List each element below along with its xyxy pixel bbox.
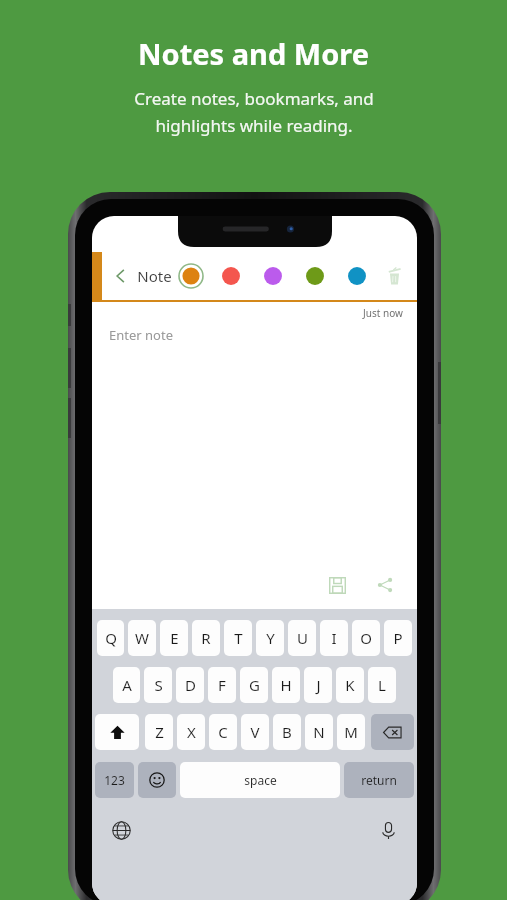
button[interactable]: B — [273, 714, 301, 750]
button[interactable]: Q — [97, 620, 124, 656]
button[interactable]: H — [272, 667, 300, 703]
staticText: B — [282, 722, 292, 742]
button[interactable]: Save note — [323, 571, 351, 599]
button[interactable]: G — [240, 667, 268, 703]
staticText: M — [344, 722, 358, 742]
button[interactable]: Share note — [371, 571, 399, 599]
button[interactable]: O — [352, 620, 380, 656]
staticText: space — [244, 772, 277, 788]
button[interactable]: R — [192, 620, 220, 656]
button[interactable]: K — [336, 667, 364, 703]
staticText: Notes and More — [138, 34, 369, 73]
staticText: I — [331, 628, 337, 648]
staticText: 123 — [104, 772, 125, 788]
staticText: V — [250, 722, 260, 742]
button[interactable]: Emoji — [138, 762, 176, 798]
staticText: D — [185, 675, 196, 695]
button[interactable]: Dictate — [373, 815, 403, 845]
button[interactable]: Note colour — [178, 263, 204, 289]
staticText: O — [360, 628, 372, 648]
staticText: C — [218, 722, 228, 742]
button[interactable]: L — [368, 667, 396, 703]
staticText: Y — [266, 628, 275, 648]
staticText: Z — [155, 722, 164, 742]
staticText: A — [122, 675, 132, 695]
button[interactable]: Z — [145, 714, 173, 750]
button[interactable]: Backspace — [371, 714, 414, 750]
button[interactable]: Shift — [95, 714, 139, 750]
button[interactable]: Enter note — [109, 326, 173, 344]
button[interactable]: Back — [110, 265, 132, 287]
button[interactable]: C — [209, 714, 237, 750]
button[interactable]: T — [224, 620, 252, 656]
staticText: Q — [105, 628, 117, 648]
button[interactable]: E — [160, 620, 188, 656]
button[interactable]: Space — [180, 762, 340, 798]
staticText: R — [201, 628, 211, 648]
button[interactable]: F — [208, 667, 236, 703]
staticText: S — [154, 675, 163, 695]
staticText: return — [361, 772, 397, 788]
button[interactable]: Y — [256, 620, 284, 656]
staticText: U — [297, 628, 308, 648]
staticText: Enter note — [109, 326, 173, 344]
button[interactable]: V — [241, 714, 269, 750]
staticText: N — [313, 722, 325, 742]
staticText: highlights while reading. — [155, 114, 353, 137]
button[interactable]: N — [305, 714, 333, 750]
button[interactable]: U — [288, 620, 316, 656]
button[interactable]: M — [337, 714, 365, 750]
button[interactable]: J — [304, 667, 332, 703]
button[interactable]: I — [320, 620, 348, 656]
staticText: Note — [137, 266, 172, 286]
button[interactable]: Note colour — [218, 263, 244, 289]
button[interactable]: D — [176, 667, 204, 703]
staticText: H — [280, 675, 292, 695]
staticText: X — [187, 722, 196, 742]
staticText: Create notes, bookmarks, and — [134, 87, 374, 110]
staticText: G — [249, 675, 260, 695]
staticText: F — [218, 675, 226, 695]
button[interactable]: Note colour — [302, 263, 328, 289]
button[interactable]: Note colour — [344, 263, 370, 289]
button[interactable]: A — [113, 667, 140, 703]
button[interactable]: Note colour — [260, 263, 286, 289]
button[interactable]: Numbers — [95, 762, 134, 798]
button[interactable]: Change keyboard — [106, 815, 136, 845]
staticText: Just now — [363, 306, 403, 320]
button[interactable]: Delete note — [379, 261, 409, 291]
staticText: E — [170, 628, 179, 648]
staticText: T — [234, 628, 243, 648]
staticText: L — [378, 675, 386, 695]
staticText: P — [393, 628, 403, 648]
staticText: J — [316, 675, 321, 695]
button[interactable]: Return — [344, 762, 414, 798]
button[interactable]: X — [177, 714, 205, 750]
button[interactable]: P — [384, 620, 412, 656]
button[interactable]: S — [144, 667, 172, 703]
staticText: K — [345, 675, 355, 695]
button[interactable]: W — [128, 620, 156, 656]
staticText: W — [135, 628, 149, 648]
